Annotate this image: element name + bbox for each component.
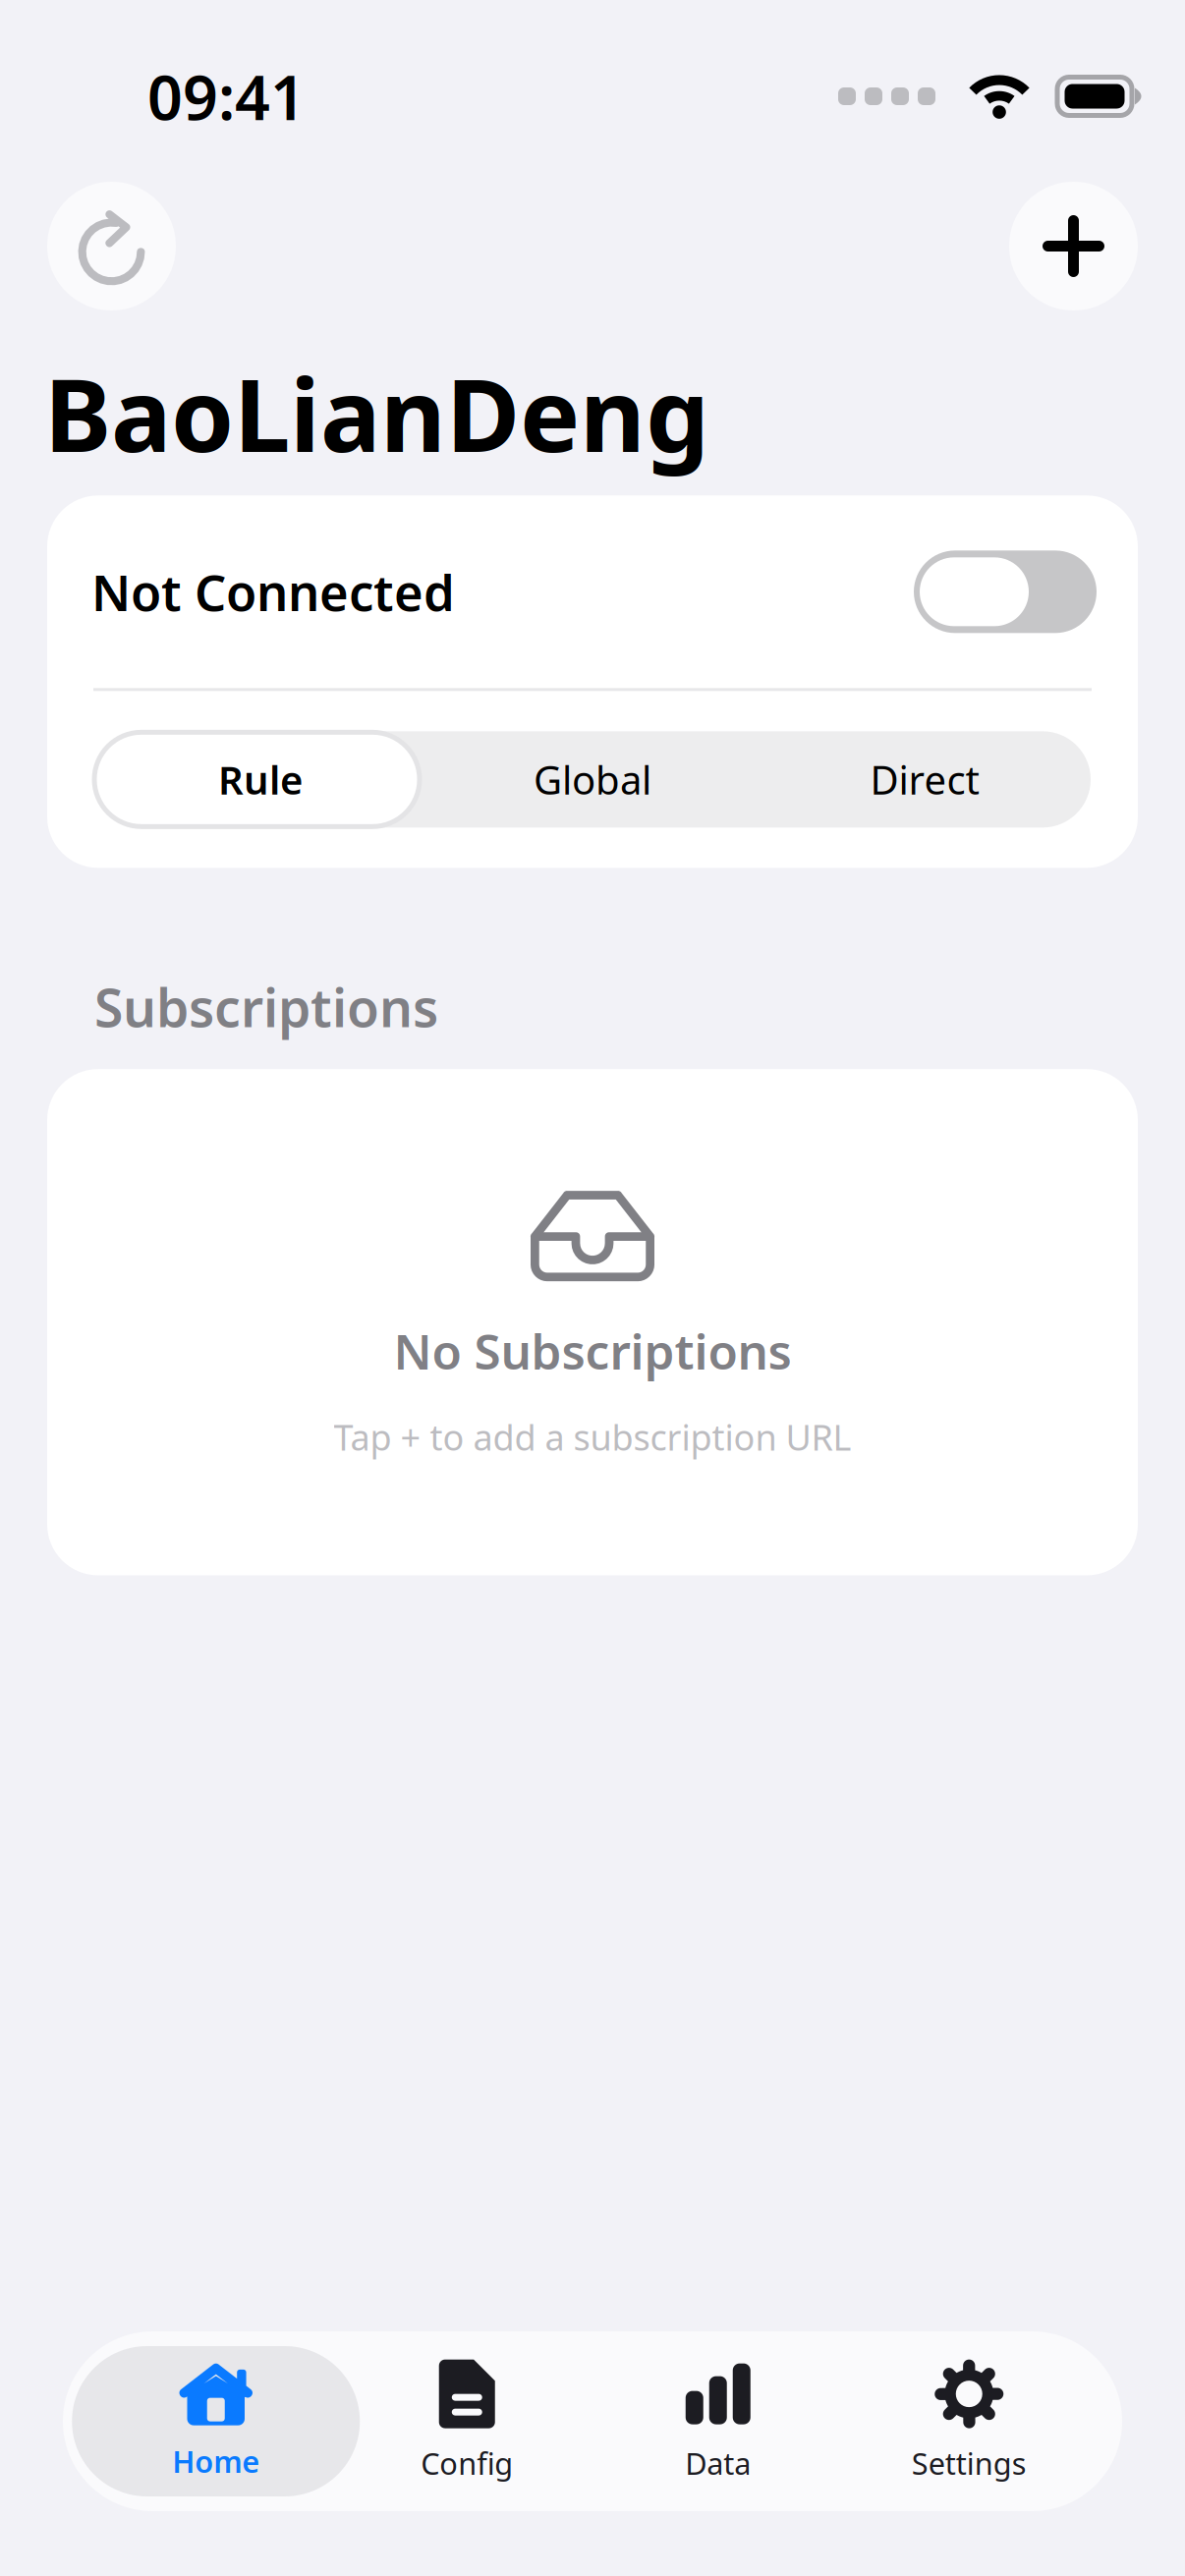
- staticText: Home: [172, 2441, 260, 2481]
- staticText: Data: [685, 2443, 751, 2483]
- staticText: Tap + to add a subscription URL: [334, 1413, 851, 1460]
- staticText: No Subscriptions: [394, 1319, 791, 1383]
- button[interactable]: Direct: [759, 731, 1091, 828]
- button[interactable]: Add subscription: [1009, 182, 1138, 310]
- button[interactable]: Global: [426, 731, 759, 828]
- button[interactable]: Data: [592, 2346, 844, 2496]
- staticText: 09:41: [147, 55, 306, 137]
- staticText: Not Connected: [91, 559, 455, 625]
- button[interactable]: Config: [341, 2346, 592, 2496]
- staticText: Global: [534, 753, 651, 806]
- staticText: Rule: [218, 753, 303, 806]
- staticText: BaoLianDeng: [44, 346, 709, 480]
- staticText: Config: [421, 2443, 513, 2483]
- button[interactable]: Settings: [844, 2346, 1095, 2496]
- staticText: Direct: [870, 753, 979, 806]
- button[interactable]: Connection toggle: [914, 550, 1097, 633]
- button[interactable]: Home: [90, 2346, 341, 2496]
- button[interactable]: Refresh: [47, 182, 176, 310]
- staticText: Subscriptions: [94, 972, 438, 1042]
- button[interactable]: Rule: [94, 731, 426, 828]
- staticText: Settings: [912, 2443, 1027, 2483]
